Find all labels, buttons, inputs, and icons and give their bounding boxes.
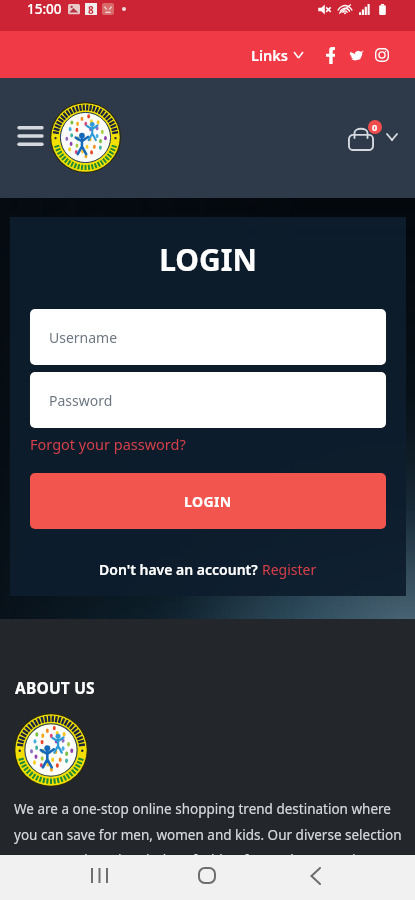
button[interactable]: LOGIN	[30, 473, 386, 529]
button[interactable]: Username	[30, 309, 386, 365]
staticText: Register	[262, 560, 317, 579]
button[interactable]: Expand cart	[381, 126, 403, 148]
button[interactable]: Password	[30, 372, 386, 428]
staticText: Don't have an account?	[99, 560, 262, 579]
staticText: Password	[49, 391, 113, 410]
button[interactable]: Links	[247, 39, 307, 71]
staticText: LOGIN	[184, 492, 232, 511]
staticText: ABOUT US	[15, 677, 95, 698]
button[interactable]: Register	[262, 560, 317, 579]
button[interactable]: Forgot your password?	[30, 432, 186, 456]
button[interactable]: Home	[171, 853, 243, 898]
staticText: LOGIN	[10, 239, 406, 280]
button[interactable]: Menu	[13, 118, 48, 153]
staticText: 0	[372, 121, 378, 133]
button[interactable]: Recent apps	[63, 853, 135, 898]
button[interactable]: Twitter	[344, 43, 368, 67]
staticText: Username	[49, 328, 118, 347]
button[interactable]: Cart	[344, 119, 380, 155]
staticText: 15:00	[27, 0, 62, 18]
staticText: 8	[88, 3, 94, 15]
staticText: We are a one-stop online shopping trend …	[14, 800, 404, 869]
button[interactable]: Back	[279, 853, 351, 898]
staticText: Forgot your password?	[30, 434, 186, 454]
button[interactable]: Instagram	[370, 43, 394, 67]
staticText: Links	[251, 45, 288, 65]
button[interactable]: Facebook	[318, 43, 342, 67]
button[interactable]: Home logo	[50, 102, 121, 173]
